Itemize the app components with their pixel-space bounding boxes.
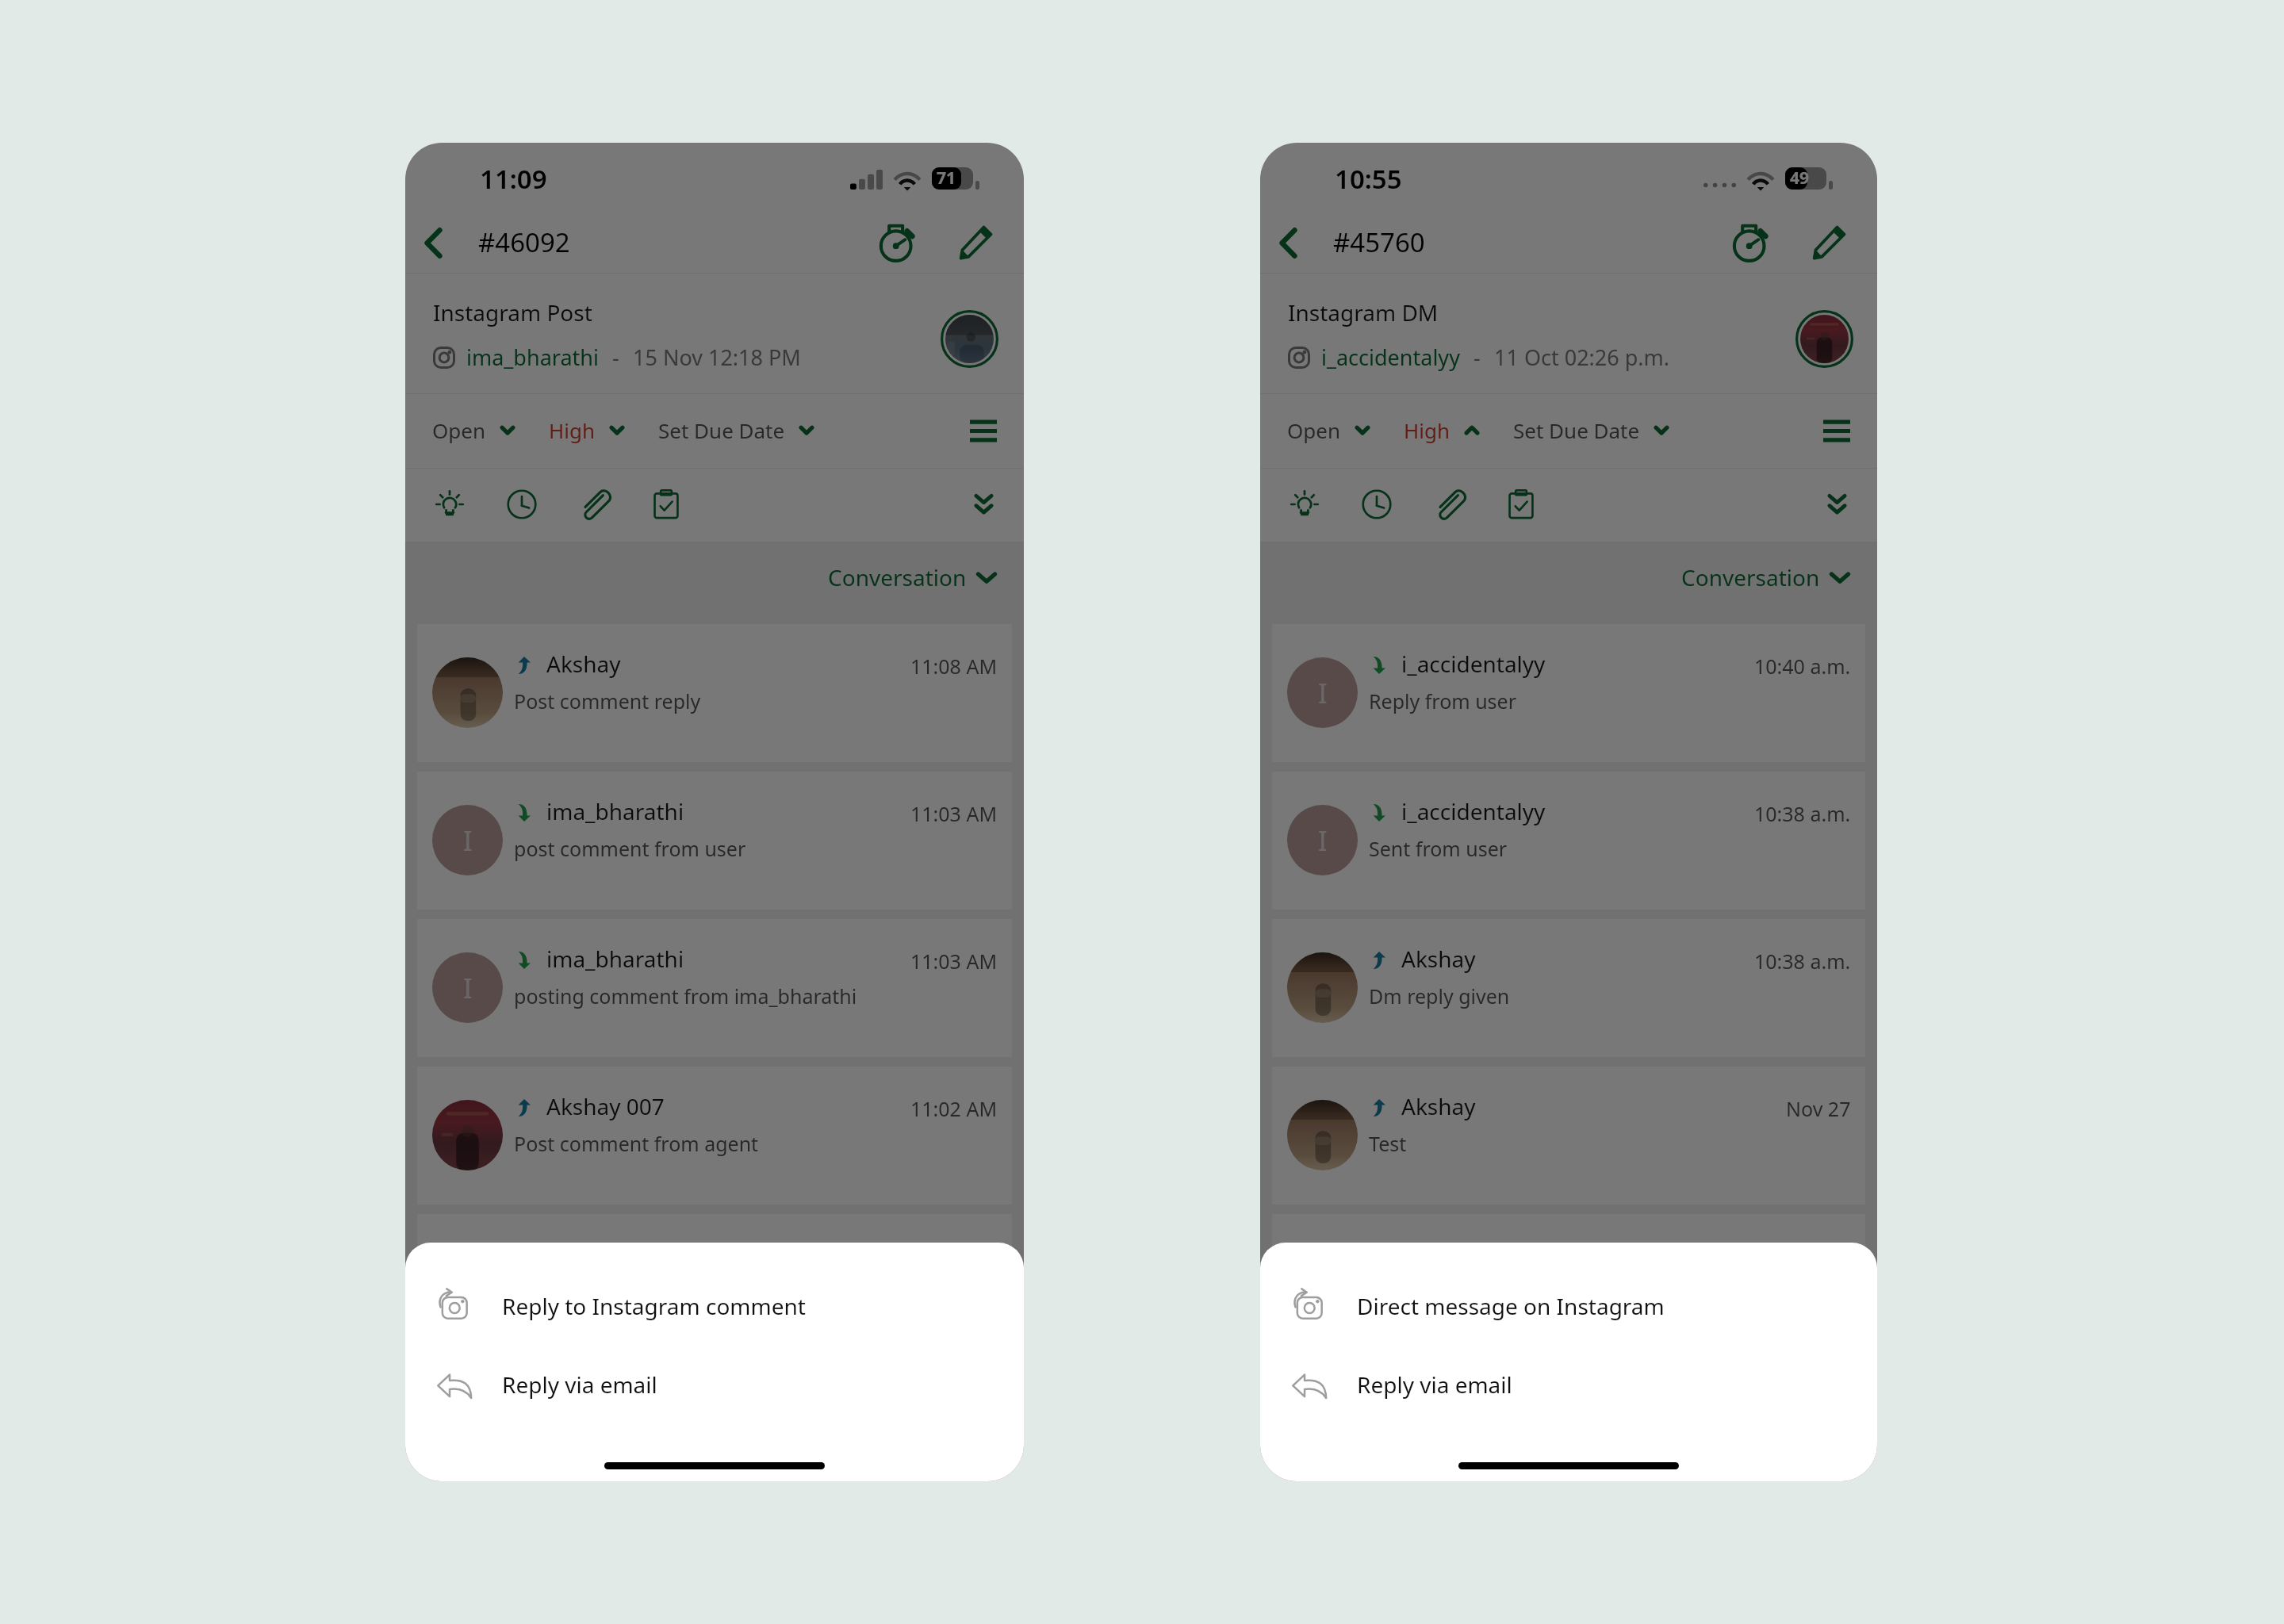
staticText: Conversation [828, 562, 967, 592]
staticText: 11 Oct 02:26 p.m. [1494, 343, 1670, 372]
staticText: 11:03 AM [910, 800, 998, 827]
button[interactable]: High [1393, 408, 1489, 452]
staticText: ima_bharathi [546, 944, 684, 974]
staticText: #45760 [1333, 224, 1425, 260]
staticText: Reply to Instagram comment [502, 1291, 806, 1321]
staticText: I [463, 822, 473, 859]
staticText: Sent from user [1369, 835, 1508, 862]
staticText: Reply via email [502, 1369, 657, 1400]
button[interactable]: Conversation [820, 553, 1004, 602]
staticText: Open [1287, 416, 1341, 444]
staticText: #46092 [478, 224, 570, 260]
staticText: Conversation [1681, 562, 1820, 592]
staticText: Dm reply given [1369, 982, 1510, 1009]
button[interactable]: Direct message on Instagram [1260, 1276, 1877, 1336]
staticText: comment received [514, 1277, 687, 1304]
staticText: 10:40 a.m. [1754, 653, 1851, 680]
staticText: Open [432, 416, 486, 444]
staticText: 11:08 AM [910, 653, 998, 680]
staticText: i_accidentalyy [1321, 343, 1460, 372]
button[interactable]: Back [407, 216, 459, 269]
staticText: i_accidentalyy [1401, 649, 1546, 679]
button[interactable]: I [1272, 624, 1865, 762]
button[interactable]: Tasks [1495, 478, 1547, 530]
staticText: 15 Nov 12:18 PM [633, 343, 801, 372]
button[interactable]: Akshay [1272, 1067, 1865, 1205]
staticText: 71 [937, 167, 956, 189]
button[interactable]: History [496, 478, 548, 530]
staticText: Akshay [546, 649, 621, 679]
staticText: Akshay 007 [546, 1091, 665, 1121]
button[interactable]: Timer [1725, 215, 1777, 267]
button[interactable]: Menu [958, 405, 1009, 456]
staticText: i_accidentalyy [1401, 796, 1546, 826]
button[interactable]: Set Due Date [648, 408, 823, 452]
button[interactable]: I [417, 772, 1012, 910]
staticText: i_accidentalyy [1401, 1239, 1546, 1269]
staticText: I [1318, 675, 1328, 711]
button[interactable]: I [417, 1214, 1012, 1352]
staticText: Direct message on Instagram [1357, 1291, 1665, 1321]
button[interactable]: Back [1262, 216, 1314, 269]
staticText: Instagram DM [1288, 297, 1439, 327]
staticText: I [1318, 822, 1328, 859]
button[interactable]: Requester avatar [1795, 310, 1853, 368]
staticText: Message [1369, 1277, 1452, 1304]
button[interactable]: Reply to Instagram comment [405, 1276, 1024, 1336]
button[interactable]: Reply via email [1260, 1354, 1877, 1415]
button[interactable]: High [538, 408, 634, 452]
button[interactable]: Insights [423, 478, 476, 530]
staticText: ima_bharathi [546, 1239, 684, 1269]
button[interactable]: Insights [1278, 478, 1331, 530]
staticText: I [463, 970, 473, 1006]
button[interactable]: Open [1277, 408, 1379, 452]
button[interactable]: Menu [1811, 405, 1862, 456]
staticText: 10:55 [1335, 161, 1402, 197]
button[interactable]: History [1351, 478, 1403, 530]
staticText: Post comment reply [514, 688, 701, 714]
button[interactable]: Requester avatar [941, 310, 998, 368]
button[interactable]: Tasks [640, 478, 692, 530]
staticText: 11:03 AM [910, 948, 998, 975]
button[interactable]: Edit [1803, 215, 1856, 267]
button[interactable]: Expand [1811, 478, 1863, 530]
staticText: Set Due Date [658, 416, 785, 444]
button[interactable]: I [1272, 772, 1865, 910]
staticText: ima_bharathi [546, 796, 684, 826]
button[interactable]: Open [422, 408, 524, 452]
staticText: Reply via email [1357, 1369, 1512, 1400]
button[interactable]: Timer [872, 215, 924, 267]
button[interactable]: Akshay [1272, 919, 1865, 1057]
button[interactable]: Attachments [1423, 478, 1475, 530]
staticText: High [1404, 416, 1450, 444]
button[interactable]: I [417, 919, 1012, 1057]
staticText: Nov 27 [1786, 1095, 1851, 1122]
staticText: 49 [1790, 167, 1810, 189]
button[interactable]: Akshay [417, 624, 1012, 762]
staticText: - [1473, 343, 1481, 372]
staticText: Post comment from agent [514, 1130, 759, 1157]
button[interactable]: Attachments [568, 478, 620, 530]
staticText: 10:38 a.m. [1754, 800, 1851, 827]
staticText: - [612, 343, 619, 372]
staticText: Akshay [1401, 1091, 1476, 1121]
staticText: ima_bharathi [466, 343, 599, 372]
button[interactable]: Conversation [1673, 553, 1857, 602]
staticText: 10:38 a.m. [1754, 948, 1851, 975]
staticText: posting comment from ima_bharathi [514, 982, 857, 1009]
staticText: I [1318, 1265, 1328, 1301]
staticText: High [549, 416, 596, 444]
button[interactable]: Expand [957, 478, 1010, 530]
staticText: 11:02 AM [910, 1095, 998, 1122]
button[interactable]: Edit [950, 215, 1002, 267]
button[interactable]: Reply via email [405, 1354, 1024, 1415]
staticText: Akshay [1401, 944, 1476, 974]
staticText: I [463, 1265, 473, 1301]
staticText: post comment from user [514, 835, 746, 862]
button[interactable]: I [1272, 1214, 1865, 1352]
staticText: Reply from user [1369, 688, 1517, 714]
button[interactable]: Akshay 007 [417, 1067, 1012, 1205]
button[interactable]: Set Due Date [1503, 408, 1678, 452]
